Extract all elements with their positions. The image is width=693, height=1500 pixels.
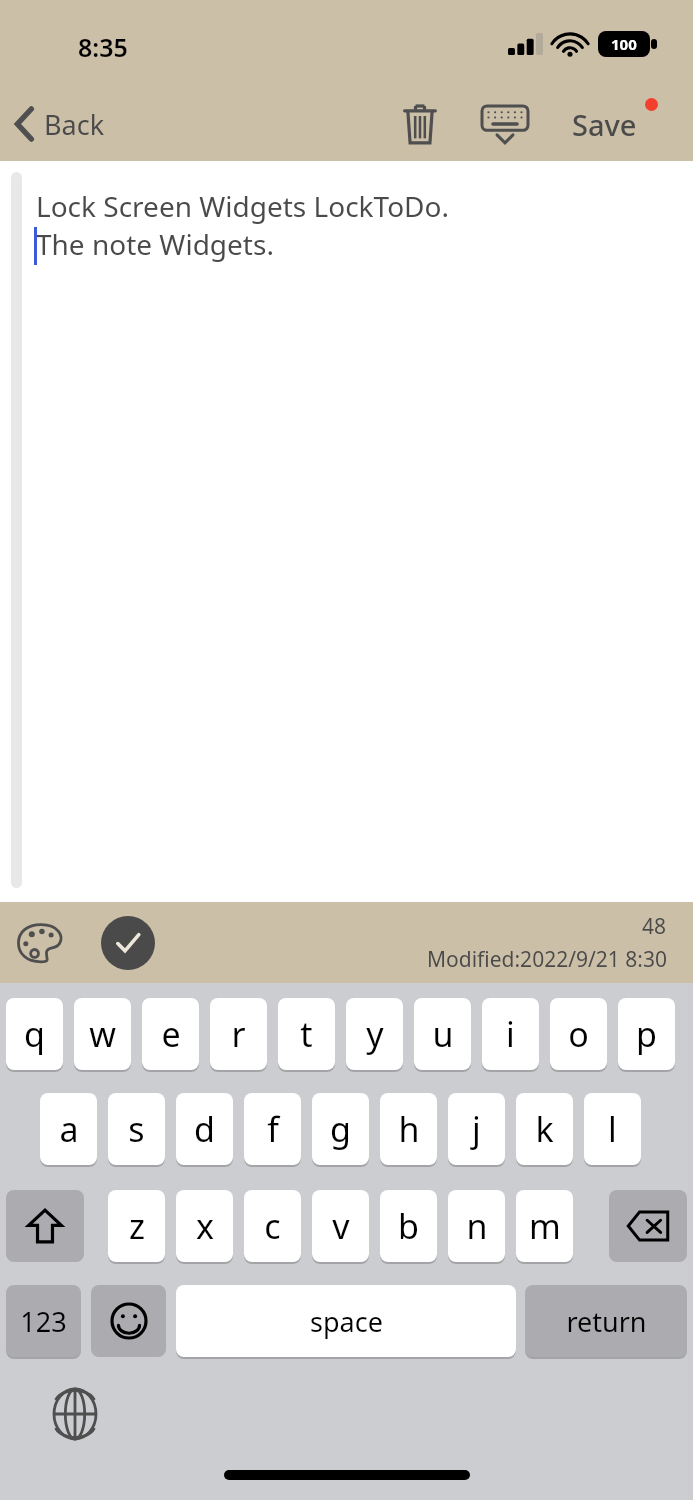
button[interactable]: Shift [6,1190,84,1262]
button[interactable]: space [176,1285,516,1357]
button[interactable]: n [448,1190,505,1262]
button[interactable]: t [278,998,335,1070]
button[interactable]: q [6,998,63,1070]
staticText: u [432,1011,454,1057]
staticText: y [366,1011,384,1057]
staticText: m [529,1203,561,1249]
button[interactable]: a [40,1093,97,1165]
button[interactable]: z [108,1190,165,1262]
button[interactable]: e [142,998,199,1070]
staticText: s [128,1106,145,1152]
staticText: 123 [20,1303,67,1340]
button[interactable]: l [584,1093,641,1165]
button[interactable]: b [380,1190,437,1262]
button[interactable]: Change keyboard [42,1381,108,1447]
staticText: n [466,1203,488,1249]
staticText: b [398,1203,419,1249]
button[interactable]: m [516,1190,573,1262]
button[interactable]: Checklist [101,916,155,970]
button[interactable]: y [346,998,403,1070]
button[interactable]: w [74,998,131,1070]
button[interactable]: Delete [390,96,450,152]
button[interactable]: j [448,1093,505,1165]
staticText: z [129,1203,145,1249]
staticText: Lock Screen Widgets LockToDo. [36,187,450,225]
button[interactable]: o [550,998,607,1070]
button[interactable]: x [176,1190,233,1262]
staticText: h [398,1106,420,1152]
staticText: l [608,1106,617,1152]
button[interactable]: Hide keyboard [472,96,538,152]
staticText: t [300,1011,313,1057]
button[interactable]: s [108,1093,165,1165]
button[interactable]: i [482,998,539,1070]
staticText: v [332,1203,350,1249]
staticText: q [24,1011,45,1057]
button[interactable]: h [380,1093,437,1165]
staticText: r [231,1011,246,1057]
staticText: d [194,1106,215,1152]
button[interactable]: Backspace [609,1190,687,1262]
button[interactable]: v [312,1190,369,1262]
staticText: j [472,1106,481,1152]
button[interactable]: 123 [6,1285,81,1357]
button[interactable]: d [176,1093,233,1165]
button[interactable]: Emoji [91,1285,166,1357]
staticText: Save [572,105,637,144]
button[interactable]: f [244,1093,301,1165]
button[interactable]: p [618,998,675,1070]
staticText: x [196,1203,214,1249]
staticText: space [310,1303,383,1340]
button[interactable]: return [525,1285,687,1357]
staticText: e [161,1011,181,1057]
staticText: 8:35 [78,30,128,64]
staticText: 100 [611,34,637,54]
button[interactable]: k [516,1093,573,1165]
staticText: g [330,1106,351,1152]
button[interactable]: u [414,998,471,1070]
button[interactable]: c [244,1190,301,1262]
staticText: a [59,1106,79,1152]
button[interactable]: Color palette [8,910,74,976]
button[interactable]: Save [560,96,649,152]
button[interactable]: Back [8,96,113,152]
staticText: i [506,1011,515,1057]
staticText: return [566,1303,647,1340]
button[interactable]: g [312,1093,369,1165]
staticText: c [264,1203,281,1249]
staticText: f [267,1106,279,1152]
staticText: p [636,1011,657,1057]
staticText: w [89,1011,116,1057]
staticText: Modified:2022/9/21 8:30 [427,945,667,974]
staticText: 48 [642,912,667,941]
button[interactable]: r [210,998,267,1070]
staticText: The note Widgets. [36,225,274,263]
staticText: k [535,1106,554,1152]
staticText: o [568,1011,589,1057]
staticText: Back [44,106,105,143]
